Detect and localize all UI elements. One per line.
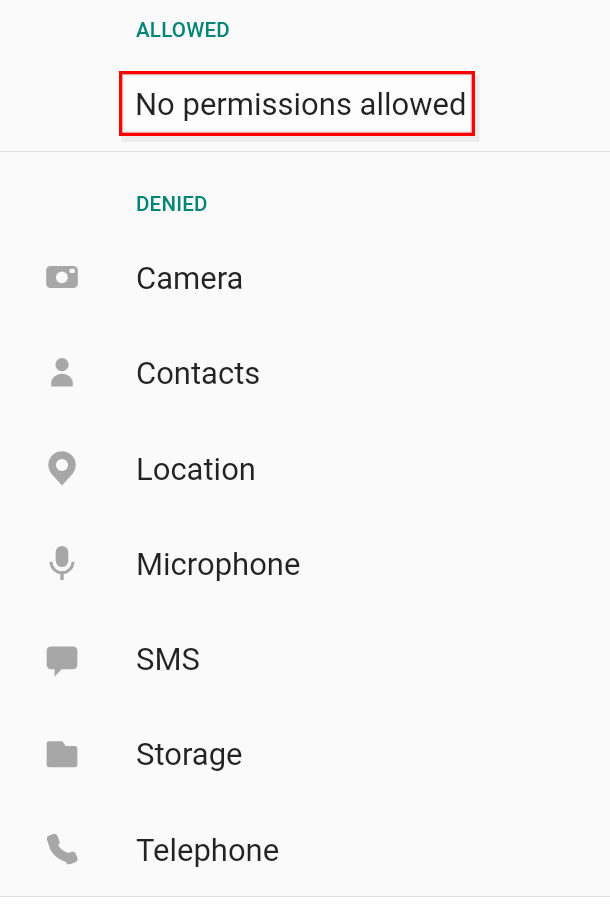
button[interactable]: No permissions allowed (119, 71, 475, 136)
button[interactable]: Microphone permission (0, 515, 610, 610)
staticText: Storage (136, 736, 243, 772)
button[interactable]: SMS permission (0, 610, 610, 705)
button[interactable]: Camera permission (0, 229, 610, 324)
other: Contacts permission (0, 324, 136, 419)
other: SMS permission (0, 610, 136, 705)
staticText: ALLOWED (136, 18, 230, 42)
staticText: SMS (136, 641, 200, 677)
staticText: No permissions allowed (135, 86, 467, 122)
other: Location permission (0, 420, 136, 515)
other: Camera permission (0, 229, 136, 324)
staticText: Telephone (136, 832, 280, 868)
button[interactable]: Contacts permission (0, 324, 610, 419)
button[interactable]: Telephone permission (0, 801, 610, 896)
staticText: Location (136, 451, 256, 487)
staticText: DENIED (136, 192, 208, 216)
button[interactable]: Storage permission (0, 705, 610, 800)
other: Microphone permission (0, 515, 136, 610)
button[interactable]: Location permission (0, 420, 610, 515)
staticText: Contacts (136, 355, 261, 391)
staticText: Camera (136, 260, 244, 296)
other: Storage permission (0, 705, 136, 800)
staticText: Microphone (136, 546, 301, 582)
other: Telephone permission (0, 801, 136, 896)
